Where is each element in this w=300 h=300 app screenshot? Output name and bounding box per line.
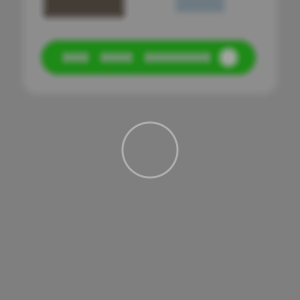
button[interactable] bbox=[41, 40, 254, 73]
